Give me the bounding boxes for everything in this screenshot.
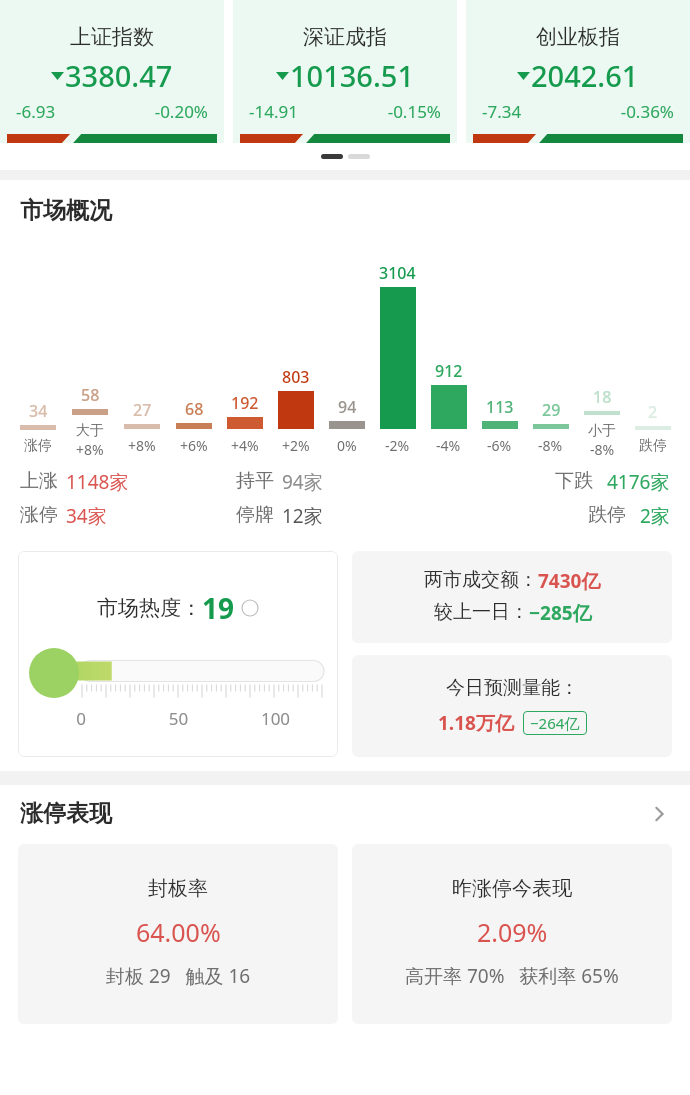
- staticText: 高开率 70% 获利率 65%: [405, 963, 619, 989]
- staticText: 58: [81, 384, 100, 406]
- button[interactable]: 深证成指: [233, 0, 457, 143]
- staticText: 创业板指: [536, 24, 620, 50]
- staticText: 今日预测量能：: [446, 676, 579, 700]
- button[interactable]: 市场热度：: [18, 551, 338, 757]
- staticText: 34: [29, 400, 48, 422]
- staticText: 34家: [66, 503, 107, 529]
- staticText: −264亿: [530, 713, 580, 733]
- staticText: 10136.51: [290, 56, 415, 95]
- staticText: 803: [282, 366, 310, 388]
- staticText: 大于: [76, 422, 104, 440]
- staticText: 0: [32, 707, 130, 730]
- button[interactable]: 今日预测量能：: [352, 655, 672, 757]
- staticText: 29: [542, 399, 561, 421]
- button[interactable]: 涨停表现: [20, 799, 670, 828]
- staticText: −285亿: [529, 600, 592, 626]
- button[interactable]: 创业板指: [466, 0, 690, 143]
- staticText: -0.20%: [112, 100, 208, 123]
- staticText: 较上一日：: [434, 600, 529, 624]
- staticText: 深证成指: [303, 24, 387, 50]
- staticText: -2%: [385, 436, 410, 455]
- staticText: 上证指数: [70, 24, 154, 50]
- staticText: 涨停: [24, 437, 52, 455]
- staticText: 64.00%: [136, 915, 221, 949]
- staticText: 113: [486, 396, 514, 418]
- staticText: 上涨: [20, 469, 58, 493]
- staticText: 27: [133, 399, 152, 421]
- staticText: 跌停: [639, 437, 667, 455]
- staticText: 封板率: [148, 876, 208, 901]
- staticText: -8%: [538, 436, 563, 455]
- staticText: 两市成交额：: [424, 568, 538, 592]
- staticText: +2%: [282, 436, 310, 455]
- staticText: 2家: [640, 503, 670, 529]
- staticText: 3380.47: [65, 56, 173, 95]
- staticText: 涨停表现: [20, 799, 648, 828]
- staticText: 市场概况: [20, 196, 112, 225]
- button[interactable]: 上证指数: [0, 0, 224, 143]
- staticText: 94: [338, 396, 357, 418]
- staticText: +8%: [76, 440, 104, 455]
- staticText: -4%: [436, 436, 461, 455]
- staticText: 2: [648, 401, 658, 423]
- staticText: 持平: [236, 469, 274, 493]
- staticText: -0.36%: [578, 100, 674, 123]
- staticText: -0.15%: [345, 100, 441, 123]
- staticText: 停牌: [236, 503, 274, 527]
- staticText: 7430亿: [538, 568, 601, 594]
- staticText: 100: [227, 707, 324, 730]
- staticText: 18: [593, 386, 612, 408]
- staticText: 封板 29 触及 16: [106, 963, 251, 989]
- staticText: 4176家: [607, 469, 670, 495]
- staticText: 0%: [337, 436, 357, 455]
- staticText: 19: [202, 589, 235, 627]
- button[interactable]: 昨涨停今表现: [352, 844, 672, 1024]
- staticText: 小于: [588, 422, 616, 440]
- staticText: -6%: [487, 436, 512, 455]
- staticText: 50: [130, 707, 227, 730]
- staticText: +6%: [180, 436, 208, 455]
- staticText: 市场热度：: [97, 595, 202, 621]
- other: 更多: [648, 803, 670, 825]
- staticText: 2.09%: [477, 915, 548, 949]
- staticText: 2042.61: [531, 56, 639, 95]
- staticText: 昨涨停今表现: [452, 876, 572, 901]
- staticText: 68: [185, 398, 204, 420]
- staticText: 12家: [282, 503, 323, 529]
- staticText: 912: [435, 360, 463, 382]
- staticText: 3104: [379, 262, 416, 284]
- staticText: 1.18万亿: [438, 710, 514, 736]
- staticText: +8%: [128, 436, 156, 455]
- staticText: -14.91: [249, 100, 345, 123]
- staticText: 下跌: [555, 469, 593, 493]
- staticText: -7.34: [482, 100, 578, 123]
- staticText: -8%: [590, 440, 615, 455]
- staticText: +4%: [231, 436, 259, 455]
- staticText: 94家: [282, 469, 323, 495]
- staticText: -6.93: [16, 100, 112, 123]
- button[interactable]: 两市成交额：: [352, 551, 672, 643]
- other: 说明: [241, 599, 259, 617]
- staticText: 跌停: [588, 503, 626, 527]
- staticText: 涨停: [20, 503, 58, 527]
- staticText: 1148家: [66, 469, 129, 495]
- staticText: 192: [231, 392, 259, 414]
- button[interactable]: 封板率: [18, 844, 338, 1024]
